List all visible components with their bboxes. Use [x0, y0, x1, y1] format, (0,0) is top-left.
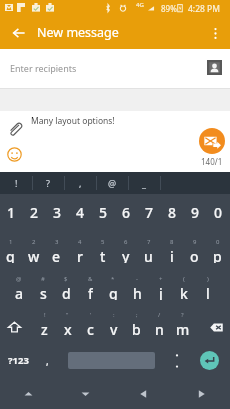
button[interactable]	[206, 233, 229, 263]
staticText: 3	[55, 238, 59, 246]
button[interactable]	[196, 270, 220, 300]
button[interactable]	[54, 270, 78, 300]
button[interactable]	[78, 270, 102, 300]
staticText: @	[16, 275, 22, 283]
button[interactable]	[91, 233, 114, 263]
button[interactable]	[92, 168, 115, 219]
button[interactable]	[33, 306, 56, 336]
staticText: 89%	[161, 3, 177, 14]
staticText: t	[100, 247, 106, 263]
button[interactable]: @	[96, 172, 128, 194]
staticText: !	[44, 311, 46, 319]
staticText: :	[113, 311, 115, 319]
staticText: v	[110, 320, 118, 336]
staticText: @	[108, 177, 117, 189]
button[interactable]: Send message	[199, 128, 225, 154]
staticText: 0	[216, 238, 220, 246]
button[interactable]	[149, 270, 173, 300]
button[interactable]: Shift	[0, 311, 28, 343]
staticText: z	[41, 320, 48, 336]
button[interactable]	[171, 306, 194, 336]
button[interactable]: Volume up	[0, 378, 57, 409]
staticText: $	[64, 275, 68, 283]
staticText: 6	[124, 238, 128, 246]
button[interactable]	[184, 168, 207, 219]
button[interactable]: ,	[64, 172, 96, 194]
staticText: 1	[9, 238, 13, 246]
button[interactable]	[0, 168, 23, 219]
staticText: 1	[7, 203, 16, 219]
button[interactable]: _	[128, 172, 160, 194]
button[interactable]	[148, 306, 171, 336]
staticText: j	[159, 284, 163, 300]
button[interactable]	[160, 233, 183, 263]
button[interactable]	[101, 270, 125, 300]
staticText: 2	[30, 203, 39, 219]
button[interactable]	[114, 233, 137, 263]
button[interactable]	[0, 233, 22, 263]
button[interactable]: !	[0, 172, 32, 194]
staticText: !	[15, 177, 18, 189]
button[interactable]	[31, 270, 55, 300]
staticText: ?	[46, 177, 50, 189]
button[interactable]	[125, 270, 149, 300]
button[interactable]	[138, 168, 161, 219]
button[interactable]	[7, 270, 31, 300]
button[interactable]	[45, 233, 68, 263]
staticText: 6	[122, 203, 131, 219]
button[interactable]	[172, 270, 196, 300]
button[interactable]	[161, 168, 184, 219]
staticText: u	[144, 247, 153, 263]
staticText: ?123	[8, 354, 29, 367]
button[interactable]	[163, 343, 191, 378]
staticText: ;	[136, 311, 138, 319]
staticText: o	[190, 247, 199, 263]
staticText: /	[158, 311, 161, 319]
button[interactable]: Back	[114, 378, 172, 409]
staticText: 5	[99, 203, 108, 219]
button[interactable]	[102, 306, 125, 336]
staticText: ,	[79, 177, 82, 189]
staticText: New message	[37, 24, 119, 41]
staticText: e	[52, 247, 61, 263]
button[interactable]	[56, 306, 79, 336]
staticText: f	[88, 284, 93, 300]
button[interactable]: ?	[32, 172, 64, 194]
staticText: 4:28 PM	[188, 3, 220, 15]
button[interactable]	[79, 306, 102, 336]
button[interactable]	[46, 168, 69, 219]
button[interactable]: Volume down	[57, 378, 114, 409]
button[interactable]: Attach	[6, 120, 22, 136]
button[interactable]	[207, 168, 230, 219]
button[interactable]: Back	[3, 17, 35, 49]
staticText: 2	[32, 238, 36, 246]
button[interactable]: Forward	[172, 378, 230, 409]
button[interactable]: Delete	[202, 311, 230, 343]
staticText: 8	[170, 238, 174, 246]
staticText: ,	[46, 354, 49, 368]
staticText: c	[87, 320, 94, 336]
button[interactable]	[115, 168, 138, 219]
button[interactable]	[183, 233, 206, 263]
button[interactable]	[68, 233, 91, 263]
button[interactable]: Emoji	[6, 146, 22, 162]
button[interactable]	[125, 306, 148, 336]
button[interactable]: ?123	[0, 343, 36, 378]
staticText: ?	[181, 311, 184, 319]
staticText: 9	[191, 203, 200, 219]
button[interactable]	[137, 233, 160, 263]
staticText: 8	[168, 203, 177, 219]
button[interactable]: ,	[36, 343, 58, 378]
button[interactable]: More options	[200, 18, 230, 48]
staticText: Enter recipients	[10, 62, 77, 74]
staticText: d	[62, 284, 71, 300]
button[interactable]: Pick contact	[207, 60, 222, 75]
staticText: a	[15, 284, 24, 300]
staticText: 9	[193, 238, 197, 246]
button[interactable]	[23, 168, 46, 219]
button[interactable]: Enter	[200, 351, 219, 370]
button[interactable]	[69, 168, 92, 219]
button[interactable]	[22, 233, 45, 263]
